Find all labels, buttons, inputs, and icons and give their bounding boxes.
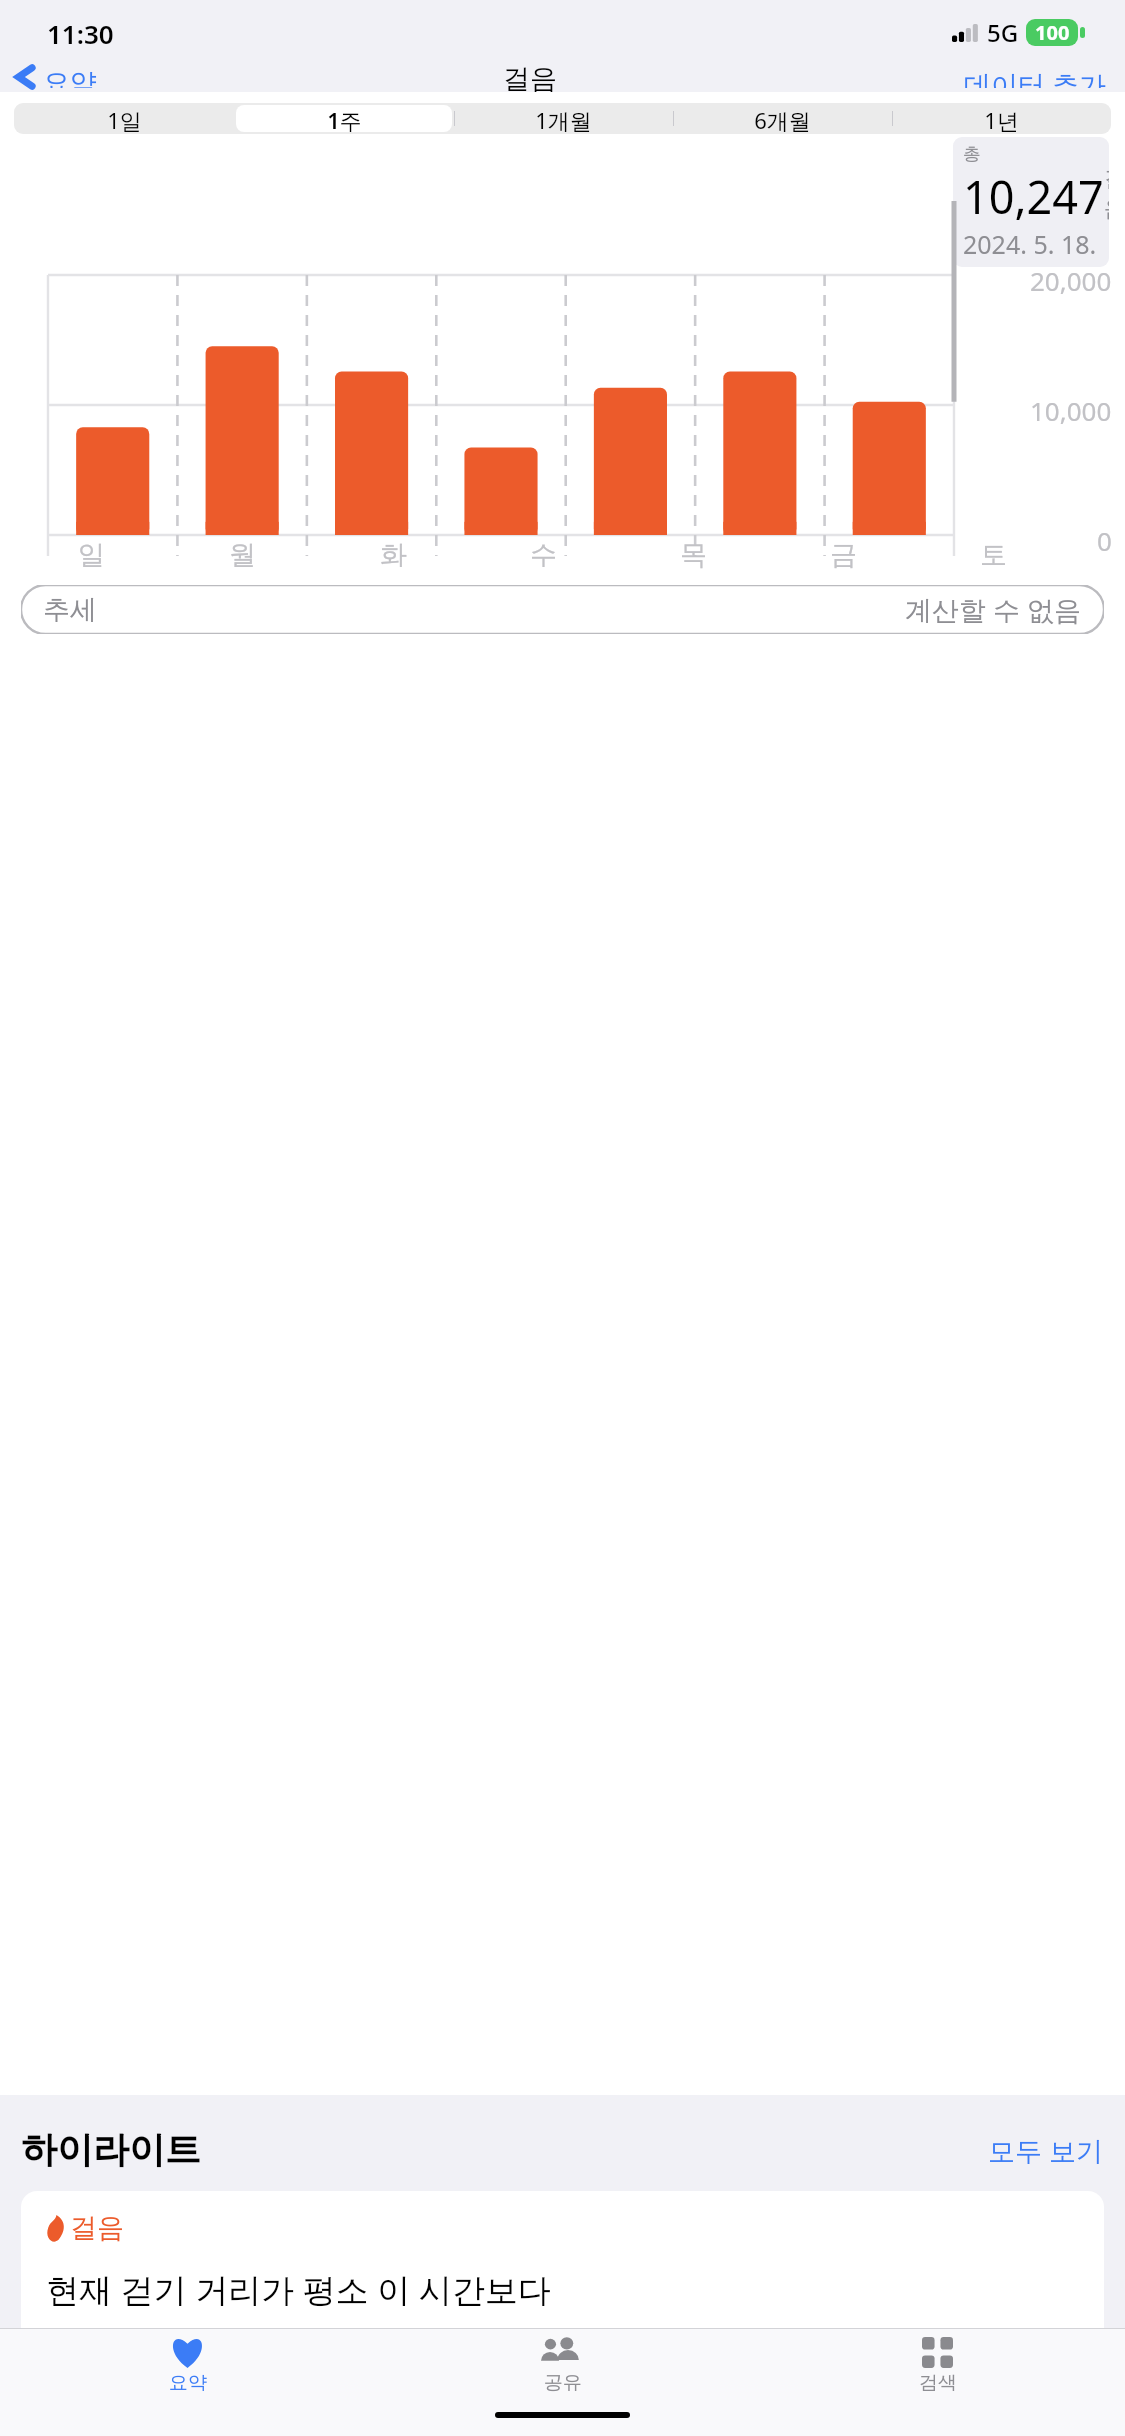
staticText: 20,000 bbox=[1030, 263, 1112, 298]
staticText: 1개월 bbox=[535, 105, 592, 132]
staticText: 5G bbox=[987, 16, 1019, 49]
staticText: 데이터 추가 bbox=[964, 66, 1107, 88]
staticText: 현재 걷기 거리가 평소 이 시간보다 bbox=[46, 2267, 551, 2312]
staticText: 월 bbox=[229, 538, 256, 572]
staticText: 일 bbox=[78, 538, 105, 572]
staticText: 0 bbox=[1097, 523, 1112, 558]
staticText: 걸음 bbox=[1104, 165, 1109, 223]
button[interactable]: 요약 bbox=[0, 62, 109, 92]
staticText: 10,247 bbox=[963, 166, 1104, 227]
staticText: 요약 bbox=[43, 66, 97, 88]
staticText: 토 bbox=[980, 538, 1007, 572]
staticText: 공유 bbox=[544, 2371, 582, 2395]
staticText: 6개월 bbox=[754, 105, 811, 132]
button[interactable]: 공유 bbox=[375, 2337, 750, 2412]
button[interactable]: 모두 보기 bbox=[988, 2132, 1104, 2172]
staticText: 화 bbox=[380, 538, 407, 572]
button[interactable]: 검색 bbox=[750, 2337, 1125, 2412]
staticText: 추세 bbox=[43, 593, 97, 627]
staticText: 총 bbox=[963, 143, 981, 166]
staticText: 목 bbox=[680, 538, 707, 572]
staticText: 금 bbox=[830, 538, 857, 572]
staticText: 10,000 bbox=[1030, 393, 1112, 428]
staticText: 100 bbox=[1035, 19, 1070, 46]
staticText: 검색 bbox=[919, 2371, 957, 2395]
button[interactable]: 6개월 bbox=[675, 105, 890, 132]
staticText: 모두 보기 bbox=[988, 2132, 1104, 2169]
staticText: 하이라이트 bbox=[21, 2127, 201, 2172]
button[interactable]: 1개월 bbox=[456, 105, 671, 132]
staticText: 걸음 bbox=[503, 62, 557, 92]
staticText: 11:30 bbox=[47, 16, 114, 51]
staticText: 1년 bbox=[984, 105, 1019, 132]
button[interactable]: 요약 bbox=[0, 2337, 375, 2412]
staticText: 수 bbox=[530, 538, 557, 572]
staticText: 1주 bbox=[327, 105, 362, 132]
button[interactable]: 데이터 추가 bbox=[952, 62, 1125, 92]
staticText: 2024. 5. 18. bbox=[963, 227, 1097, 261]
staticText: 요약 bbox=[169, 2371, 207, 2395]
button[interactable]: 1년 bbox=[894, 105, 1109, 132]
button[interactable]: 걸음 bbox=[21, 2191, 1104, 2328]
button[interactable]: 추세 bbox=[21, 585, 1104, 634]
staticText: 걸음 bbox=[70, 2211, 124, 2245]
button[interactable]: 1주 bbox=[236, 105, 452, 132]
staticText: 계산할 수 없음 bbox=[905, 591, 1082, 628]
button[interactable]: 1일 bbox=[16, 105, 232, 132]
staticText: 1일 bbox=[107, 105, 142, 132]
